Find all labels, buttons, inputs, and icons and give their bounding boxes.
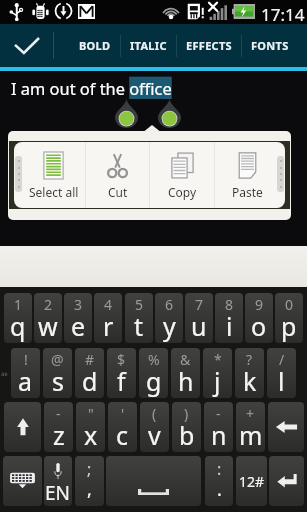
staticText: u	[191, 309, 207, 343]
button[interactable]: Copy	[150, 142, 214, 208]
staticText: ITALIC	[130, 38, 167, 53]
button[interactable]: /	[267, 348, 296, 398]
staticText: Paste	[232, 184, 263, 200]
button[interactable]: Voice input	[44, 456, 72, 506]
staticText: 12#	[239, 472, 265, 491]
button[interactable]: Select all	[22, 142, 85, 208]
staticText: c	[116, 418, 129, 452]
staticText: z	[53, 418, 65, 452]
staticText: l	[278, 364, 285, 398]
staticText: r	[103, 309, 114, 343]
button[interactable]: 7	[185, 293, 213, 343]
button[interactable]: 5	[125, 293, 153, 343]
button[interactable]: '	[108, 402, 137, 452]
staticText: j	[214, 364, 221, 398]
staticText: FONTS	[251, 38, 289, 53]
staticText: )	[184, 404, 189, 423]
button[interactable]: :	[205, 456, 233, 506]
button[interactable]: Backspace	[268, 402, 304, 452]
button[interactable]: :	[205, 456, 233, 506]
button[interactable]: (	[140, 402, 169, 452]
staticText: h	[178, 364, 194, 398]
staticText: g	[146, 364, 162, 398]
other: Space	[106, 456, 201, 506]
staticText: v	[148, 418, 161, 452]
button[interactable]: ;	[75, 456, 104, 506]
button[interactable]: *	[203, 348, 232, 398]
button[interactable]: Space	[106, 456, 201, 506]
other: Backspace	[268, 402, 304, 452]
staticText: Select all	[29, 184, 79, 200]
button[interactable]: #	[75, 348, 104, 398]
staticText: +	[246, 404, 255, 423]
button[interactable]: 3	[64, 293, 92, 343]
button[interactable]: %	[139, 348, 168, 398]
staticText: t	[134, 309, 144, 343]
staticText: Copy	[168, 184, 197, 200]
button[interactable]: 4	[94, 293, 122, 343]
staticText: (	[152, 404, 157, 423]
staticText: 8	[225, 295, 234, 314]
staticText: :	[217, 458, 222, 480]
staticText: o	[251, 309, 267, 343]
button[interactable]: ;	[75, 456, 104, 506]
button[interactable]: BOLD	[70, 24, 120, 67]
staticText: q	[10, 309, 26, 343]
button[interactable]: EFFECTS	[177, 24, 241, 67]
button[interactable]: 8	[215, 293, 243, 343]
button[interactable]: 2	[34, 293, 62, 343]
button[interactable]: &	[171, 348, 200, 398]
button[interactable]: Paste	[215, 142, 279, 208]
staticText: k	[243, 364, 257, 398]
staticText: 0	[285, 295, 294, 314]
staticText: s	[52, 364, 64, 398]
staticText: .	[217, 477, 222, 502]
button[interactable]: +	[236, 402, 265, 452]
staticText: àè	[1, 370, 8, 378]
staticText: !	[24, 350, 28, 369]
staticText: 5	[135, 295, 144, 314]
button[interactable]: -	[44, 402, 73, 452]
staticText: #	[85, 350, 95, 369]
button[interactable]: !	[11, 348, 40, 398]
button[interactable]: Cut	[86, 142, 149, 208]
button[interactable]: FONTS	[242, 24, 298, 67]
staticText: y	[163, 309, 176, 343]
button[interactable]: ITALIC	[121, 24, 176, 67]
staticText: ;	[87, 458, 92, 480]
other: Shift	[4, 402, 41, 452]
button[interactable]: 0	[275, 293, 303, 343]
staticText: f	[117, 364, 126, 398]
staticText: &	[180, 350, 191, 369]
staticText: "	[88, 404, 94, 423]
button[interactable]: ?	[235, 348, 264, 398]
button[interactable]: "	[76, 402, 105, 452]
button[interactable]: $	[107, 348, 136, 398]
button[interactable]: 9	[245, 293, 273, 343]
staticText: 7	[195, 295, 204, 314]
staticText: m	[239, 418, 263, 452]
staticText: w	[38, 309, 58, 343]
staticText: e	[71, 309, 86, 343]
staticText: 9	[255, 295, 264, 314]
staticText: Cut	[108, 184, 128, 200]
button[interactable]: -	[204, 402, 233, 452]
button[interactable]: Done	[0, 24, 53, 67]
staticText: ,	[87, 477, 92, 502]
button[interactable]: @	[43, 348, 72, 398]
button[interactable]: 12#	[236, 456, 267, 506]
other: Enter	[269, 456, 304, 506]
other: Voice input	[44, 456, 72, 506]
staticText: BOLD	[79, 38, 111, 53]
button[interactable]: Enter	[269, 456, 304, 506]
staticText: ?	[246, 350, 253, 369]
staticText: %	[148, 350, 160, 369]
staticText: -	[216, 404, 221, 423]
button[interactable]: 6	[155, 293, 183, 343]
button[interactable]: )	[172, 402, 201, 452]
button[interactable]: Hide keyboard	[3, 456, 42, 506]
button[interactable]: 1	[4, 293, 32, 343]
staticText: d	[82, 364, 98, 398]
staticText: 2	[44, 295, 53, 314]
button[interactable]: Shift	[4, 402, 41, 452]
